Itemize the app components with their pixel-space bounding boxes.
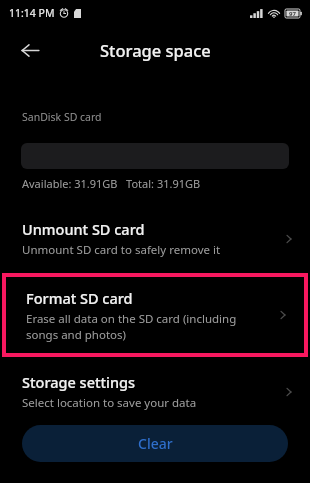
staticText: Available: 31.91GB Total: 31.91GB <box>22 176 201 191</box>
staticText: Clear <box>138 434 173 453</box>
staticText: 97 <box>289 10 296 18</box>
staticText: Storage space <box>100 39 211 61</box>
button[interactable]: Back <box>13 33 47 67</box>
staticText: Erase all data on the SD card (including… <box>26 311 264 342</box>
button[interactable]: Storage settings <box>0 362 310 421</box>
staticText: Storage settings <box>22 372 136 392</box>
staticText: Unmount SD card <box>22 219 145 239</box>
staticText: Select location to save your data <box>22 395 197 411</box>
staticText: 11:14 PM <box>9 6 55 20</box>
button[interactable]: Clear <box>22 425 288 462</box>
staticText: Unmount SD card to safely remove it <box>22 242 221 258</box>
staticText: Format SD card <box>26 288 133 308</box>
button[interactable]: Unmount SD card <box>0 209 310 268</box>
button[interactable]: Format SD card <box>6 277 304 353</box>
staticText: SanDisk SD card <box>22 110 102 124</box>
